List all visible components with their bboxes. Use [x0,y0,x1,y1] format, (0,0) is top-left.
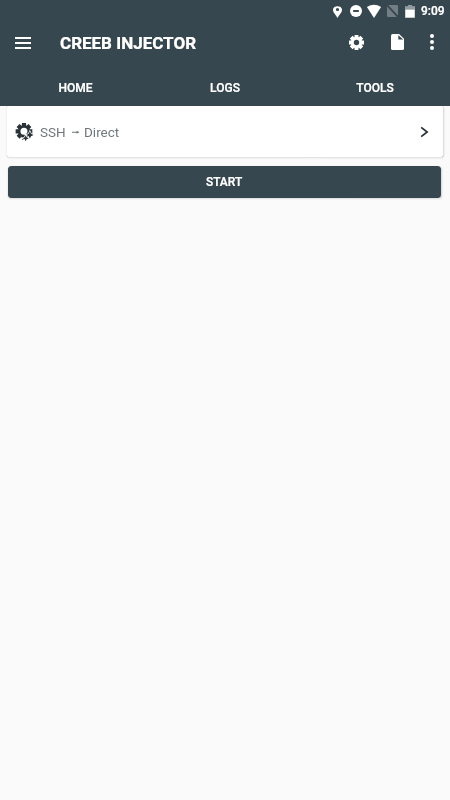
staticText: LOGS [210,81,240,95]
button[interactable]: LOGS [150,62,300,105]
button[interactable]: More options [414,24,450,60]
staticText: CREEB INJECTOR [60,33,196,53]
button[interactable]: START [8,166,441,198]
staticText: SSH [40,124,66,140]
button[interactable]: HOME [0,62,150,105]
staticText: START [206,175,243,189]
staticText: Direct [84,124,120,140]
staticText: 9:09 [421,4,445,18]
button[interactable]: Log file [374,22,414,62]
staticText: HOME [58,81,93,95]
button[interactable]: TOOLS [300,62,450,105]
button[interactable]: SSH [7,106,443,157]
button[interactable]: Settings [334,22,374,62]
button[interactable]: Open navigation menu [0,22,48,62]
staticText: TOOLS [356,81,394,95]
